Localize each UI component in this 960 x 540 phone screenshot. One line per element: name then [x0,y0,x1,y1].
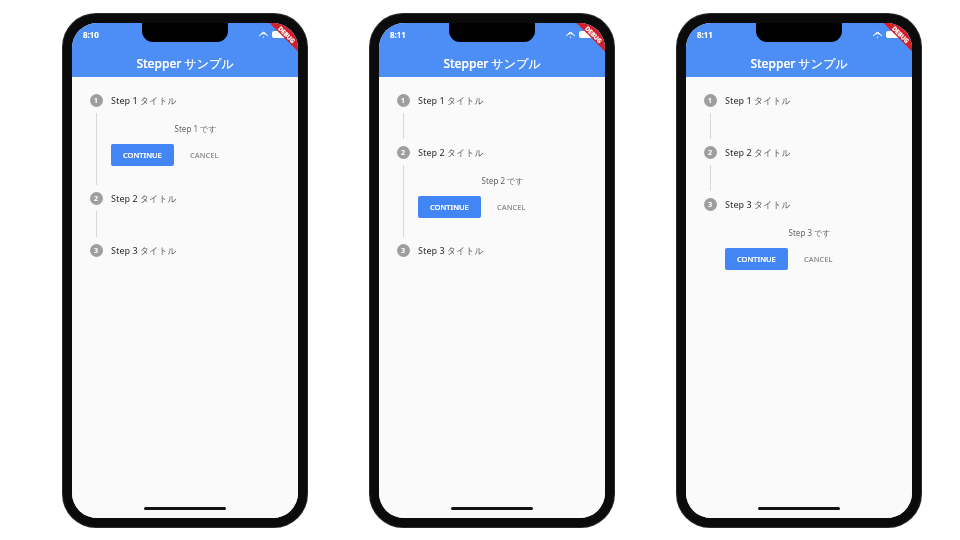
staticText: DEBUG [276,25,297,45]
staticText: Step 1 タイトル [111,94,177,106]
button[interactable]: 3 [90,237,280,263]
staticText: Step 1 タイトル [725,94,791,106]
staticText: 3 [708,200,713,210]
staticText: CONTINUE [123,150,162,160]
staticText: Step 1 タイトル [418,94,484,106]
button[interactable]: CONTINUE [418,196,481,218]
staticText: Step 2 です [418,175,587,186]
staticText: 2 [708,148,713,158]
button[interactable]: CONTINUE [111,144,174,166]
button[interactable]: 2 [704,139,894,165]
staticText: 3 [401,246,406,256]
staticText: CONTINUE [430,202,469,212]
staticText: 8:10 [83,29,99,40]
button[interactable]: CANCEL [796,248,841,270]
button[interactable]: 1 [90,87,280,113]
button[interactable]: 2 [90,185,280,211]
staticText: Stepper サンプル [443,55,541,71]
staticText: 8:11 [390,29,406,40]
staticText: Step 2 タイトル [725,146,791,158]
staticText: 1 [401,96,406,106]
staticText: Step 3 タイトル [111,244,177,256]
staticText: Step 3 タイトル [418,244,484,256]
button[interactable]: 2 [397,139,587,165]
staticText: Stepper サンプル [750,55,848,71]
staticText: 1 [708,96,713,106]
staticText: CANCEL [190,150,219,160]
button[interactable]: 1 [704,87,894,113]
staticText: CANCEL [804,254,833,264]
staticText: Step 2 タイトル [418,146,484,158]
button[interactable]: CANCEL [489,196,534,218]
staticText: 3 [94,246,99,256]
staticText: Step 3 です [725,227,894,238]
staticText: 2 [94,194,99,204]
button[interactable]: 3 [704,191,894,217]
button[interactable]: CONTINUE [725,248,788,270]
staticText: 8:11 [697,29,713,40]
button[interactable]: 3 [397,237,587,263]
staticText: 2 [401,148,406,158]
staticText: Step 1 です [111,123,280,134]
staticText: DEBUG [890,25,911,45]
staticText: DEBUG [583,25,604,45]
button[interactable]: 1 [397,87,587,113]
staticText: CANCEL [497,202,526,212]
staticText: CONTINUE [737,254,776,264]
staticText: 1 [94,96,99,106]
button[interactable]: CANCEL [182,144,227,166]
staticText: Stepper サンプル [136,55,234,71]
staticText: Step 3 タイトル [725,198,791,210]
staticText: Step 2 タイトル [111,192,177,204]
